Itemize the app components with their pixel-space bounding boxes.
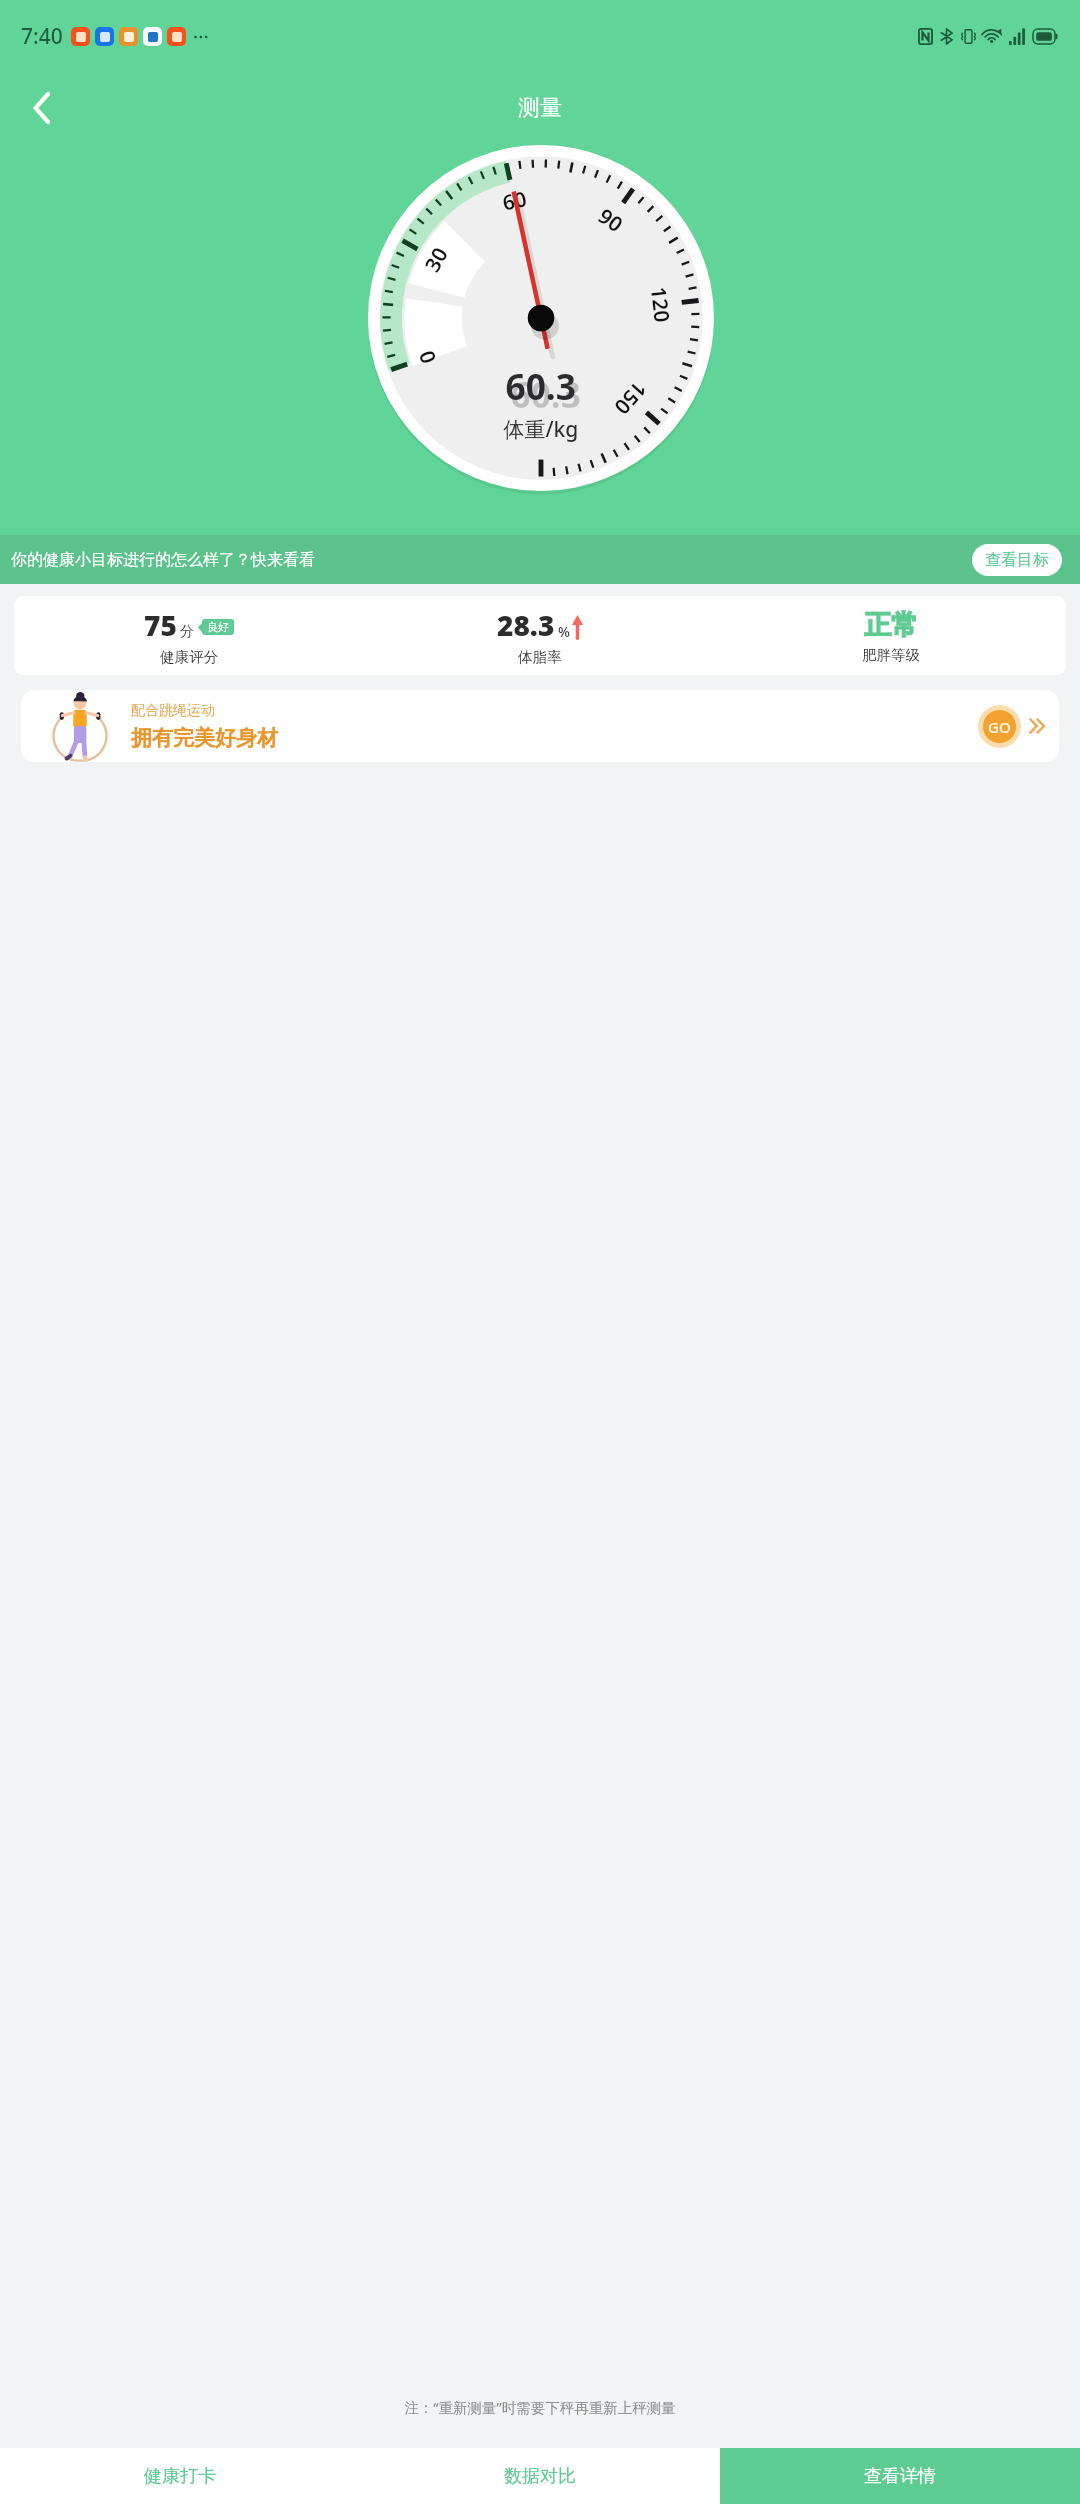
button[interactable]: 你的健康小目标进行的怎么样了？快来看看 [0, 535, 1080, 584]
staticText: 查看详情 [864, 2465, 936, 2488]
staticText: 正常 [864, 608, 918, 642]
staticText: 分 [180, 623, 194, 641]
staticText: % [558, 622, 570, 641]
button[interactable]: 查看详情 [720, 2448, 1080, 2504]
staticText: 体脂率 [518, 648, 562, 666]
staticText: 7:40 [21, 22, 63, 51]
staticText: 查看目标 [985, 550, 1049, 570]
staticText: 肥胖等级 [862, 646, 920, 664]
staticText: 健康打卡 [144, 2465, 216, 2488]
staticText: 注：“重新测量”时需要下秤再重新上秤测量 [0, 2397, 1080, 2417]
button[interactable]: GO [978, 705, 1021, 748]
staticText: 良好 [207, 620, 229, 634]
staticText: 你的健康小目标进行的怎么样了？快来看看 [11, 550, 315, 570]
staticText: GO [988, 717, 1011, 737]
button[interactable]: 75 [14, 596, 1066, 675]
button[interactable]: 数据对比 [360, 2448, 720, 2504]
staticText: 75 [144, 606, 177, 644]
staticText: 数据对比 [504, 2465, 576, 2488]
button[interactable]: 查看目标 [972, 544, 1062, 576]
button[interactable]: 健康打卡 [0, 2448, 360, 2504]
button[interactable]: Back [14, 80, 70, 136]
staticText: 28.3 [497, 606, 555, 644]
staticText: 拥有完美好身材 [131, 725, 278, 751]
button[interactable]: 配合跳绳运动 [21, 690, 1059, 762]
staticText: 配合跳绳运动 [131, 702, 215, 720]
staticText: 测量 [518, 94, 562, 122]
staticText: 健康评分 [160, 648, 218, 666]
